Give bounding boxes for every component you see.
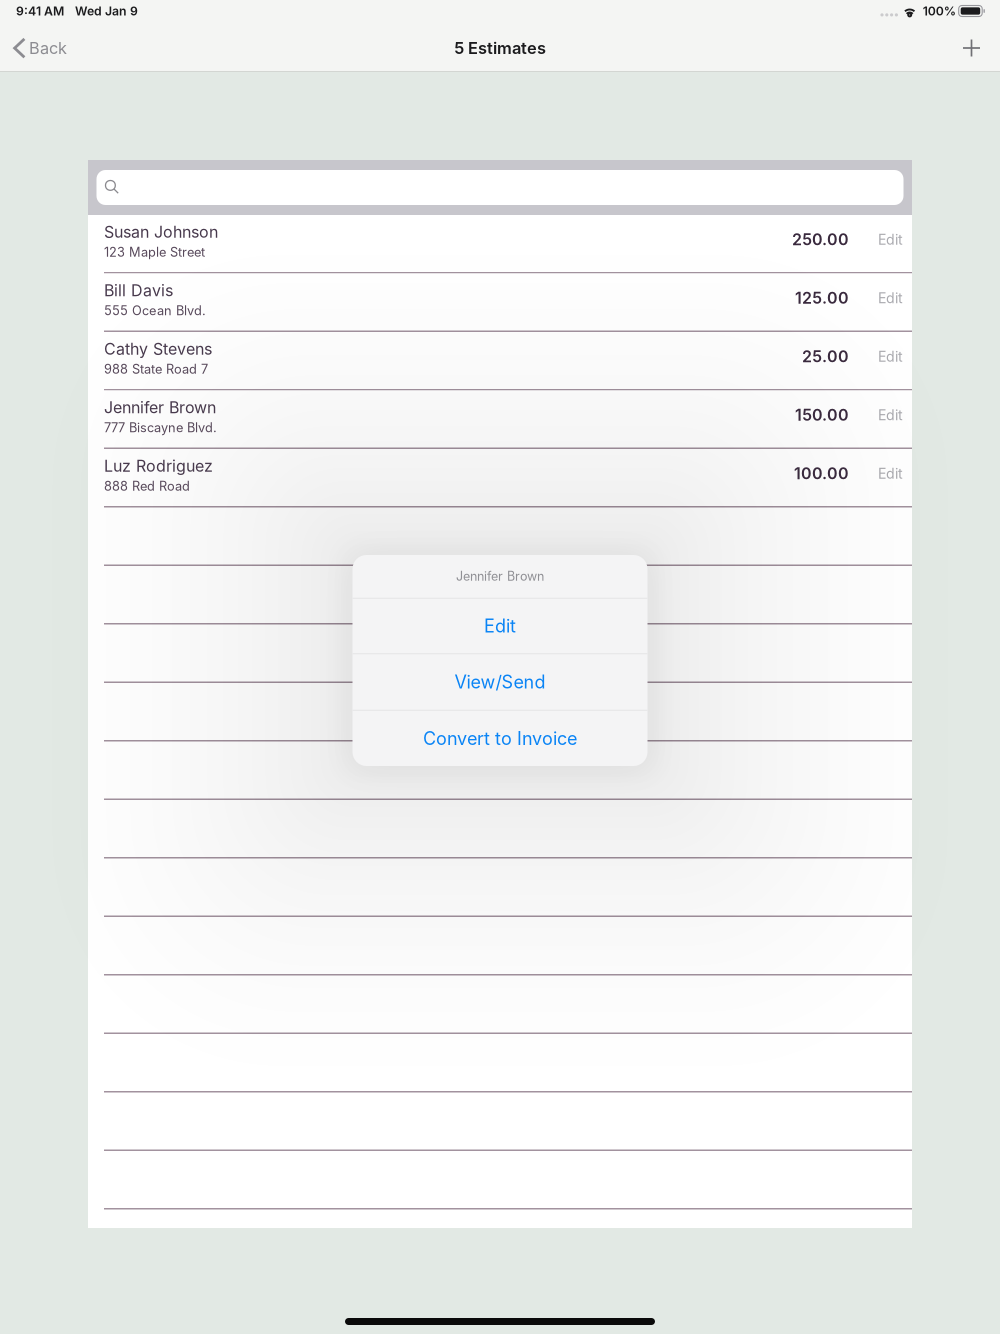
staticText: Convert to Invoice [423,728,577,749]
staticText: 988 State Road 7 [104,361,208,377]
button[interactable]: Convert to Invoice [352,711,647,766]
staticText: Luz Rodriguez [104,456,213,476]
staticText: Edit [484,615,516,637]
staticText: Edit [878,231,903,248]
button[interactable]: Bill Davis [88,273,912,332]
staticText: 150.00 [795,405,849,425]
staticText: 9:41 AM [16,4,64,18]
staticText: Wed Jan 9 [75,4,138,18]
button[interactable]: Susan Johnson [88,215,912,273]
button[interactable]: Add estimate [953,25,990,71]
button[interactable]: Jennifer Brown [88,390,912,449]
staticText: Edit [878,289,903,306]
button[interactable]: Edit [352,599,647,653]
button[interactable]: Back [0,25,81,71]
staticText: 100% [923,4,956,18]
staticText: 5 Estimates [454,38,546,58]
staticText: 100.00 [794,464,849,483]
staticText: Edit [878,406,903,423]
staticText: Edit [878,465,903,482]
staticText: Jennifer Brown [104,398,216,417]
button[interactable]: View/Send [352,654,647,710]
button[interactable]: Cathy Stevens [88,332,912,390]
staticText: Jennifer Brown [456,569,544,584]
staticText: 123 Maple Street [104,244,205,260]
staticText: Bill Davis [104,281,173,300]
staticText: 555 Ocean Blvd. [104,303,206,318]
staticText: Susan Johnson [104,222,218,242]
staticText: Cathy Stevens [104,339,212,359]
staticText: 25.00 [802,347,849,366]
staticText: 125.00 [795,288,849,308]
staticText: 250.00 [792,230,849,249]
staticText: Back [29,38,67,58]
staticText: 888 Red Road [104,478,190,494]
button[interactable]: Luz Rodriguez [88,449,912,507]
staticText: View/Send [454,671,545,693]
staticText: 777 Biscayne Blvd. [104,420,217,435]
staticText: Edit [878,348,903,365]
